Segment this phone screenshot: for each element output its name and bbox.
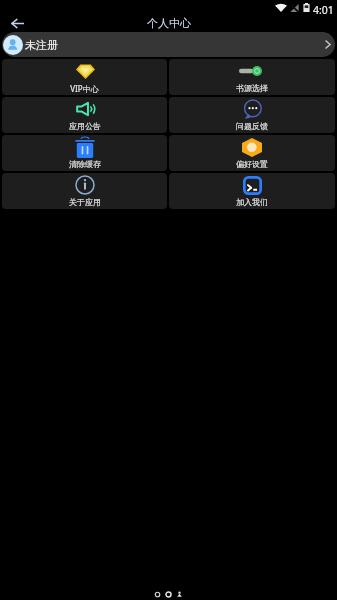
- staticText: 书源选择: [236, 83, 268, 93]
- button[interactable]: VIP中心: [2, 59, 167, 95]
- button[interactable]: 加入我们: [169, 173, 335, 209]
- staticText: 问题反馈: [236, 121, 268, 131]
- button[interactable]: 问题反馈: [169, 97, 335, 133]
- staticText: VIP中心: [70, 83, 99, 94]
- staticText: 应用公告: [69, 121, 101, 131]
- button[interactable]: Back: [153, 590, 162, 599]
- staticText: 关于应用: [69, 197, 101, 207]
- button[interactable]: 书源选择: [169, 59, 335, 95]
- button[interactable]: 偏好设置: [169, 135, 335, 171]
- button[interactable]: Back: [5, 14, 29, 32]
- button[interactable]: 清除缓存: [2, 135, 167, 171]
- button[interactable]: Recents: [175, 590, 184, 599]
- button[interactable]: Home: [164, 590, 173, 599]
- staticText: 未注册: [25, 38, 58, 52]
- staticText: 4:01: [313, 3, 334, 17]
- staticText: 清除缓存: [69, 159, 101, 169]
- button[interactable]: 应用公告: [2, 97, 167, 133]
- button[interactable]: 未注册: [2, 32, 335, 57]
- staticText: 个人中心: [147, 16, 191, 30]
- button[interactable]: 关于应用: [2, 173, 167, 209]
- staticText: 加入我们: [236, 197, 268, 207]
- staticText: 偏好设置: [236, 159, 268, 169]
